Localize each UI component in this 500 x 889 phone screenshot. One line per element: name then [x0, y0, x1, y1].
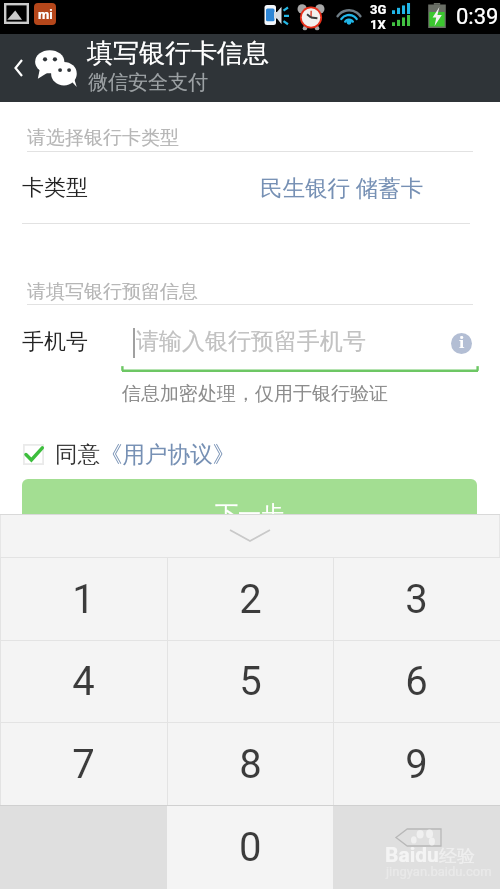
- staticText: 0:39: [456, 4, 499, 30]
- staticText: 同意: [55, 440, 100, 468]
- staticText: 请选择银行卡类型: [27, 126, 179, 150]
- staticText: 下一步: [215, 500, 284, 529]
- button[interactable]: 同意: [23, 439, 235, 469]
- button[interactable]: Back: [0, 34, 86, 102]
- staticText: 请填写银行预留信息: [27, 280, 198, 304]
- staticText: 2: [239, 576, 262, 623]
- staticText: 请输入银行预留手机号: [136, 327, 366, 356]
- staticText: 《用户协议》: [100, 440, 235, 468]
- button[interactable]: 3: [333, 558, 500, 640]
- staticText: 1X: [370, 17, 386, 32]
- button[interactable]: 2: [167, 558, 333, 640]
- staticText: 微信安全支付: [88, 70, 208, 95]
- staticText: 卡类型: [22, 174, 88, 202]
- button[interactable]: Info: [451, 333, 472, 354]
- staticText: jingyan.baidu.com: [386, 864, 492, 879]
- button[interactable]: 6: [333, 641, 500, 722]
- staticText: 1: [72, 576, 95, 623]
- button[interactable]: 9: [333, 723, 500, 805]
- staticText: mi: [38, 7, 53, 22]
- staticText: 6: [405, 658, 428, 705]
- staticText: 3G: [370, 2, 387, 17]
- button[interactable]: 4: [0, 641, 167, 722]
- button[interactable]: 8: [167, 723, 333, 805]
- staticText: 信息加密处理，仅用于银行验证: [122, 382, 388, 406]
- staticText: 民生银行 储蓄卡: [260, 172, 424, 203]
- staticText: 7: [72, 741, 95, 788]
- staticText: 填写银行卡信息: [87, 37, 269, 70]
- staticText: Baidu: [385, 843, 439, 868]
- button[interactable]: Delete: [333, 806, 500, 889]
- staticText: i: [459, 334, 465, 353]
- button[interactable]: 1: [0, 558, 167, 640]
- button[interactable]: 0: [167, 806, 333, 889]
- staticText: 5: [239, 658, 262, 705]
- button[interactable]: 5: [167, 641, 333, 722]
- staticText: 9: [405, 741, 428, 788]
- staticText: 经验: [439, 845, 475, 868]
- button[interactable]: 卡类型: [0, 152, 500, 223]
- staticText: 手机号: [22, 328, 88, 356]
- staticText: 0: [239, 824, 262, 871]
- button[interactable]: 7: [0, 723, 167, 805]
- staticText: 4: [72, 658, 95, 705]
- staticText: 8: [239, 741, 262, 788]
- staticText: 3: [405, 576, 428, 623]
- button[interactable]: 下一步: [22, 479, 477, 549]
